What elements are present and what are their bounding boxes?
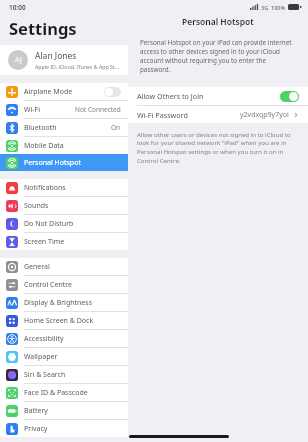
button[interactable]: Control Centre — [0, 276, 128, 293]
staticText: AJ — [15, 55, 22, 65]
button[interactable]: Wallpaper — [0, 348, 128, 365]
button[interactable]: Do Not Disturb — [0, 215, 128, 232]
button[interactable]: Sounds — [0, 197, 128, 214]
staticText: Personal Hotspot — [182, 16, 254, 28]
button[interactable]: Notifications — [0, 179, 128, 196]
button[interactable]: Personal Hotspot — [0, 154, 128, 171]
button[interactable]: Home Screen & Dock — [0, 312, 128, 329]
button[interactable]: Airplane Mode — [0, 83, 128, 100]
staticText: Face ID & Passcode — [24, 388, 121, 398]
staticText: Not Connected — [75, 105, 121, 114]
staticText: Personal Hotspot — [24, 158, 121, 168]
staticText: Sounds — [24, 201, 121, 211]
button[interactable]: Privacy — [0, 420, 128, 437]
staticText: Wi-Fi — [24, 105, 75, 115]
button[interactable]: Accessibility — [0, 330, 128, 347]
staticText: Mobile Data — [24, 141, 121, 151]
button[interactable]: Siri & Search — [0, 366, 128, 383]
staticText: General — [24, 262, 121, 272]
button[interactable]: General — [0, 258, 128, 275]
staticText: 10:00 — [9, 3, 26, 12]
staticText: y2vdxqp9y7yoi — [240, 110, 289, 120]
other: Open — [293, 112, 299, 118]
staticText: Screen Time — [24, 237, 121, 247]
staticText: On — [111, 123, 121, 132]
button[interactable]: Bluetooth — [0, 119, 128, 136]
button[interactable]: Display & Brightness — [0, 294, 128, 311]
staticText: Alan Jones — [35, 50, 77, 62]
staticText: Bluetooth — [24, 123, 111, 133]
button[interactable]: Mobile Data — [0, 137, 128, 154]
button[interactable]: Screen Time — [0, 233, 128, 250]
staticText: Display & Brightness — [24, 298, 121, 308]
staticText: Privacy — [24, 424, 121, 434]
staticText: Settings — [9, 17, 77, 39]
staticText: Wallpaper — [24, 352, 121, 362]
button[interactable]: Wi-Fi — [0, 101, 128, 118]
staticText: Notifications — [24, 183, 121, 193]
staticText: Siri & Search — [24, 370, 121, 380]
button[interactable]: Face ID & Passcode — [0, 384, 128, 401]
staticText: Allow other users or devices not signed … — [137, 130, 299, 165]
staticText: Battery — [24, 406, 121, 416]
staticText: Allow Others to Join — [137, 91, 280, 101]
staticText: Airplane Mode — [24, 87, 104, 97]
staticText: Control Centre — [24, 280, 121, 290]
staticText: Wi-Fi Password — [137, 110, 240, 120]
staticText: Do Not Disturb — [24, 219, 121, 229]
staticText: Personal Hotspot on your iPad can provid… — [140, 38, 296, 74]
staticText: Accessibility — [24, 334, 121, 344]
staticText: Home Screen & Dock — [24, 316, 121, 326]
staticText: 100% — [271, 4, 286, 11]
button[interactable]: Allow Others to Join — [128, 87, 308, 105]
button[interactable]: Battery — [0, 402, 128, 419]
button[interactable]: Wi-Fi Password — [128, 106, 308, 123]
staticText: Apple ID, iCloud, iTunes & App St… — [35, 63, 119, 70]
button[interactable]: AJ — [0, 45, 128, 75]
staticText: 3G — [261, 4, 269, 11]
